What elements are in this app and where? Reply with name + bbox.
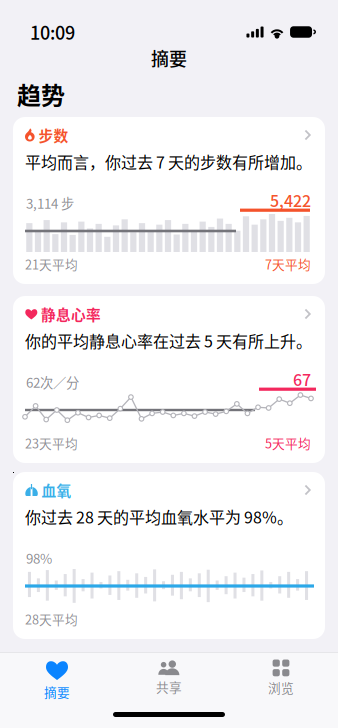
staticText: 5天平均 <box>265 434 311 452</box>
button[interactable]: 摘要 <box>1 652 113 697</box>
staticText: 浏览 <box>268 678 294 697</box>
staticText: 你过去 28 天的平均血氧水平为 98%。 <box>25 505 293 528</box>
staticText: 98% <box>26 548 52 568</box>
staticText: 10:09 <box>30 19 75 45</box>
staticText: 平均而言，你过去 7 天的步数有所增加。 <box>25 150 312 173</box>
button[interactable]: 静息心率 <box>13 296 325 463</box>
staticText: 3,114 步 <box>26 193 74 213</box>
staticText: 62次／分 <box>26 372 79 392</box>
staticText: 28天平均 <box>25 610 78 628</box>
button[interactable]: 摘要 <box>0 48 338 68</box>
staticText: 趋势 <box>17 77 65 111</box>
staticText: 23天平均 <box>25 434 78 452</box>
button[interactable]: 浏览 <box>225 652 337 697</box>
staticText: 步数 <box>38 124 68 146</box>
staticText: 5,422 <box>270 188 311 212</box>
staticText: 67 <box>293 367 311 391</box>
staticText: 你的平均静息心率在过去 5 天有所上升。 <box>25 329 312 352</box>
staticText: 7天平均 <box>265 255 311 273</box>
button[interactable]: 共享 <box>113 652 225 697</box>
staticText: 共享 <box>156 677 182 696</box>
staticText: 摘要 <box>151 45 187 71</box>
staticText: 血氧 <box>42 479 72 501</box>
staticText: 21天平均 <box>25 255 78 273</box>
staticText: 静息心率 <box>41 303 101 325</box>
button[interactable]: 步数 <box>13 117 325 284</box>
button[interactable]: 血氧 <box>13 472 325 639</box>
staticText: 摘要 <box>44 682 70 701</box>
